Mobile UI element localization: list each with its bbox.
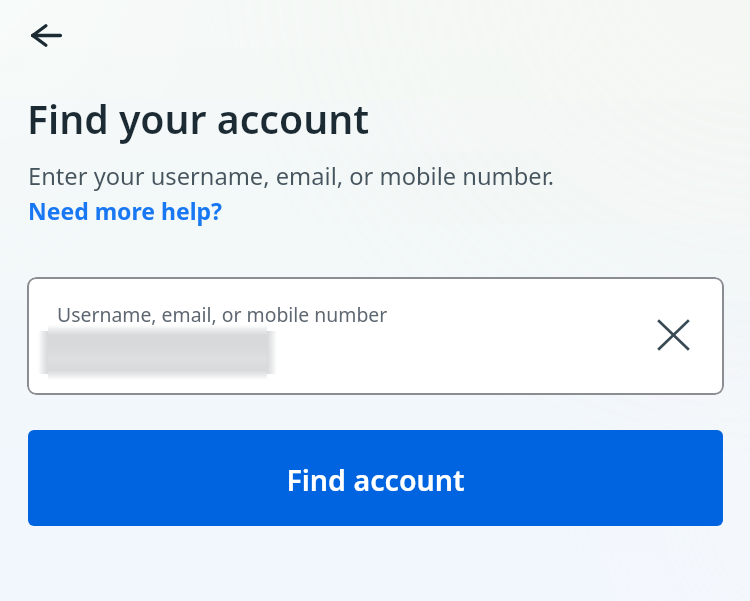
button[interactable]: Find account	[28, 430, 723, 526]
button[interactable]: Need more help?	[28, 195, 223, 226]
staticText: Find your account	[27, 92, 370, 145]
staticText: Username, email, or mobile number	[57, 301, 388, 327]
staticText: Enter your username, email, or mobile nu…	[28, 160, 555, 192]
button[interactable]: Username, email, or mobile number	[27, 277, 724, 395]
button[interactable]: Clear text	[644, 306, 702, 364]
staticText: Find account	[286, 460, 465, 499]
button[interactable]: Back	[15, 4, 77, 66]
